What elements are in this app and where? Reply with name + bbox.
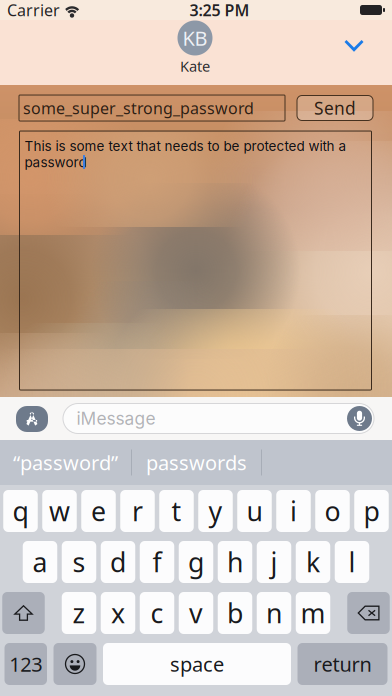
button[interactable]: e [81,490,116,532]
button[interactable]: 123 [4,643,47,685]
staticText: k [306,544,320,580]
staticText: some_super_strong_password [23,97,254,119]
button[interactable]: g [179,541,213,583]
staticText: f [152,544,161,580]
staticText: b [227,595,243,631]
button[interactable]: i [276,490,311,532]
staticText: t [171,493,181,529]
staticText: g [188,544,204,580]
staticText: a [32,544,47,580]
button[interactable]: s [62,541,96,583]
button[interactable]: App Store [16,406,48,432]
staticText: Send [314,96,356,119]
button[interactable]: f [140,541,174,583]
button[interactable]: Shift [2,592,45,634]
button[interactable]: l [335,541,369,583]
staticText: i [290,493,297,529]
button[interactable]: d [101,541,135,583]
button[interactable]: w [42,490,77,532]
staticText: q [12,493,28,529]
button[interactable]: h [218,541,252,583]
button[interactable]: Hide details [334,29,374,63]
staticText: KB [182,25,207,51]
staticText: c [150,595,163,631]
staticText: p [363,493,379,529]
staticText: This is some text that needs to be prote… [24,138,346,171]
button[interactable]: x [101,592,135,634]
button[interactable]: Emoji [53,643,96,685]
button[interactable]: u [237,490,272,532]
staticText: l [348,544,355,580]
button[interactable]: m [296,592,330,634]
staticText: v [189,595,203,631]
button[interactable]: j [257,541,291,583]
staticText: “password” [13,449,118,476]
button[interactable]: space [103,643,291,685]
staticText: Carrier [7,0,60,21]
staticText: s [72,544,85,580]
button[interactable]: y [198,490,233,532]
button[interactable]: q [3,490,38,532]
button[interactable]: a [23,541,57,583]
staticText: u [246,493,262,529]
staticText: x [111,595,125,631]
staticText: m [300,595,325,631]
button[interactable]: Delete [347,592,390,634]
staticText: z [72,595,85,631]
button[interactable]: t [159,490,194,532]
staticText: j [270,544,277,580]
staticText: iMessage [76,408,155,429]
button[interactable]: z [62,592,96,634]
staticText: Kate [180,56,210,76]
button[interactable]: n [257,592,291,634]
staticText: passwords [146,449,247,476]
staticText: h [227,544,243,580]
button[interactable]: Dictate [347,406,372,431]
button[interactable]: Send [297,95,373,120]
staticText: y [208,493,222,529]
staticText: o [324,493,340,529]
staticText: n [266,595,282,631]
button[interactable]: v [179,592,213,634]
button[interactable]: o [315,490,350,532]
staticText: 123 [9,651,42,677]
staticText: e [91,493,106,529]
button[interactable]: return [297,643,387,685]
button[interactable]: c [140,592,174,634]
button[interactable]: passwords [132,440,261,485]
staticText: d [110,544,126,580]
staticText: return [313,651,371,677]
button[interactable]: r [120,490,155,532]
staticText: space [170,651,224,677]
button[interactable]: k [296,541,330,583]
button[interactable]: p [354,490,389,532]
staticText: w [49,493,70,529]
button[interactable]: “password” [0,440,131,485]
staticText: 3:25 PM [189,0,249,21]
button[interactable]: b [218,592,252,634]
staticText: r [132,493,143,529]
